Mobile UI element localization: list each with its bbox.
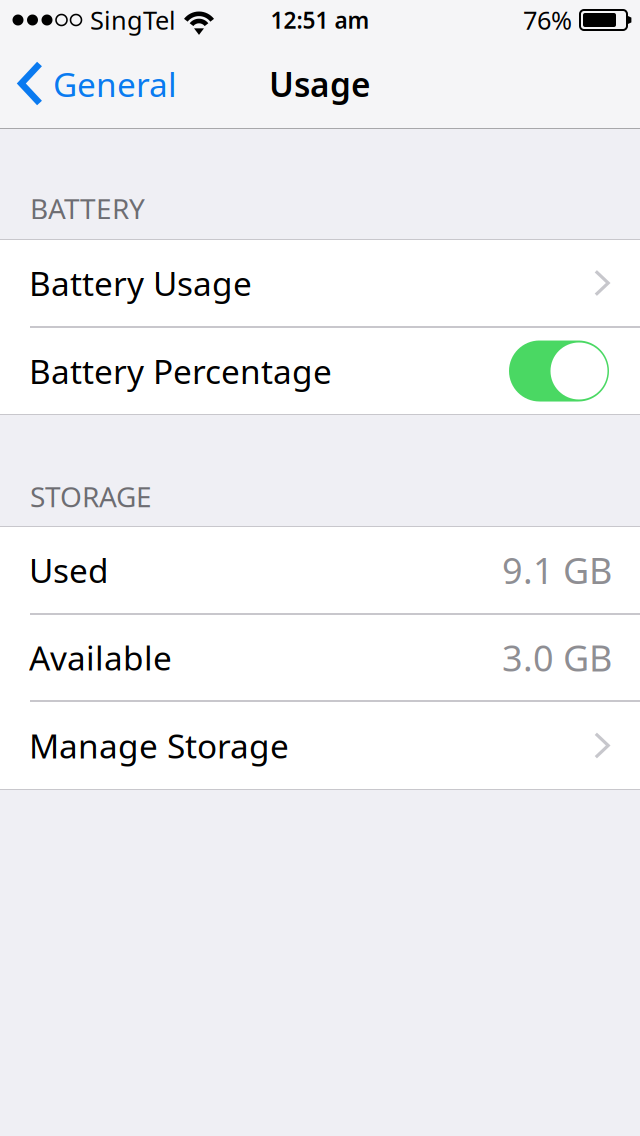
- button[interactable]: Back to General: [0, 40, 189, 128]
- staticText: BATTERY: [30, 190, 145, 227]
- staticText: Battery Usage: [29, 261, 252, 305]
- staticText: General: [53, 62, 177, 106]
- staticText: Battery Percentage: [29, 349, 332, 393]
- staticText: Manage Storage: [29, 723, 289, 768]
- staticText: Usage: [269, 62, 371, 106]
- staticText: 12:51 am: [270, 5, 369, 35]
- staticText: Used: [29, 548, 109, 592]
- button[interactable]: Battery Usage: [0, 240, 640, 326]
- staticText: 76%: [523, 3, 572, 37]
- staticText: STORAGE: [30, 478, 152, 515]
- button[interactable]: Manage Storage: [0, 702, 640, 789]
- staticText: SingTel: [90, 3, 176, 37]
- button[interactable]: Battery Percentage, on: [509, 340, 609, 401]
- staticText: Available: [29, 635, 172, 680]
- staticText: 9.1 GB: [502, 546, 612, 594]
- staticText: 3.0 GB: [502, 634, 612, 681]
